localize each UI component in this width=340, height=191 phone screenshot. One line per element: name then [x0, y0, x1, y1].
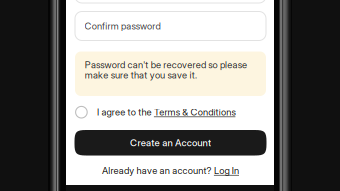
- button[interactable]: I agree to the Terms & Conditions: [75, 104, 266, 121]
- staticText: make sure that you save it.: [85, 69, 197, 81]
- staticText: Confirm password: [84, 20, 160, 32]
- staticText: Password can't be recovered so please: [85, 59, 247, 71]
- button[interactable]: Already have an account? Log In: [75, 163, 266, 178]
- button[interactable]: Create an Account: [74, 130, 266, 155]
- staticText: I agree to the Terms & Conditions: [97, 106, 235, 118]
- staticText: Already have an account? Log In: [102, 165, 239, 176]
- staticText: Create an Account: [130, 137, 211, 148]
